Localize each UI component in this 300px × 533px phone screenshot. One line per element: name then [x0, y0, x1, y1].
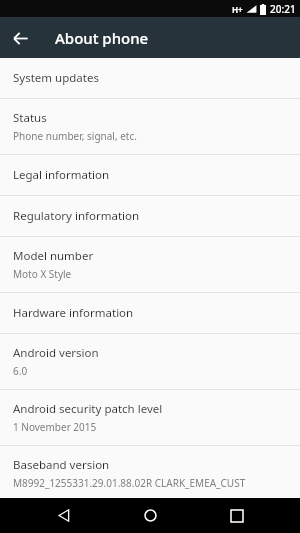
- staticText: Hardware information: [13, 305, 134, 321]
- staticText: Baseband version: [13, 457, 110, 473]
- staticText: Model number: [13, 248, 94, 264]
- button[interactable]: Hardware information: [0, 293, 300, 333]
- button[interactable]: Legal information: [0, 155, 300, 195]
- staticText: Android version: [13, 345, 99, 361]
- staticText: About phone: [55, 28, 149, 48]
- staticText: Phone number, signal, etc.: [13, 129, 137, 143]
- button[interactable]: Back: [41, 498, 87, 533]
- button[interactable]: Status: [0, 99, 300, 154]
- staticText: System updates: [13, 70, 99, 86]
- staticText: 6.0: [13, 364, 28, 378]
- staticText: 1 November 2015: [13, 420, 97, 434]
- staticText: M8992_1255331.29.01.88.02R CLARK_EMEA_CU…: [13, 476, 246, 490]
- staticText: Legal information: [13, 167, 110, 183]
- staticText: Android security patch level: [13, 401, 163, 417]
- staticText: Moto X Style: [13, 267, 72, 281]
- staticText: H+: [232, 4, 243, 15]
- button[interactable]: Regulatory information: [0, 196, 300, 236]
- button[interactable]: Android security patch level: [0, 390, 300, 445]
- button[interactable]: Back: [0, 18, 40, 58]
- staticText: 20:21: [270, 2, 296, 16]
- button[interactable]: Model number: [0, 237, 300, 292]
- button[interactable]: Recent apps: [214, 498, 260, 533]
- button[interactable]: Home: [127, 498, 173, 533]
- button[interactable]: System updates: [0, 58, 300, 98]
- button[interactable]: Baseband version: [0, 446, 300, 498]
- button[interactable]: Android version: [0, 334, 300, 389]
- staticText: Status: [13, 110, 47, 126]
- staticText: Regulatory information: [13, 208, 140, 224]
